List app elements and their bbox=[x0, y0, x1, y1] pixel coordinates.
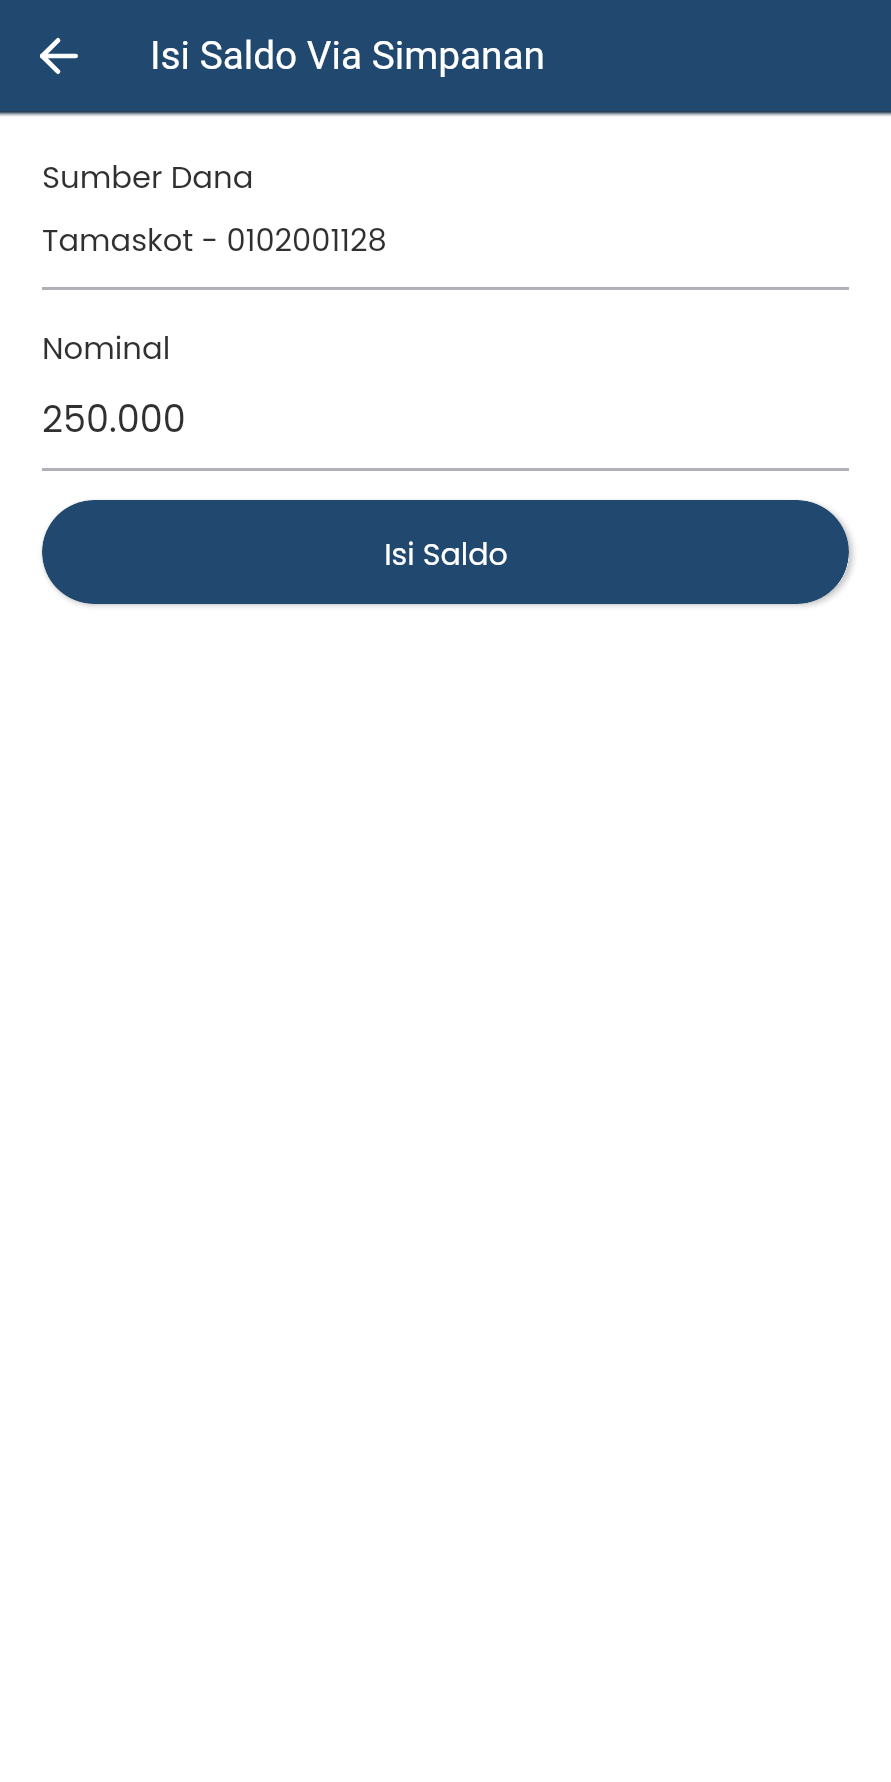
button[interactable]: Isi Saldo bbox=[42, 500, 849, 604]
staticText: Tamaskot - 0102001128 bbox=[42, 219, 387, 262]
staticText: Sumber Dana bbox=[42, 156, 254, 199]
button[interactable] bbox=[42, 315, 849, 470]
staticText: Nominal bbox=[42, 327, 171, 370]
button[interactable] bbox=[42, 144, 849, 289]
staticText: Isi Saldo Via Simpanan bbox=[150, 33, 546, 78]
staticText: 250.000 bbox=[42, 394, 186, 445]
staticText: Isi Saldo bbox=[384, 533, 508, 575]
button[interactable]: Back bbox=[22, 19, 96, 93]
